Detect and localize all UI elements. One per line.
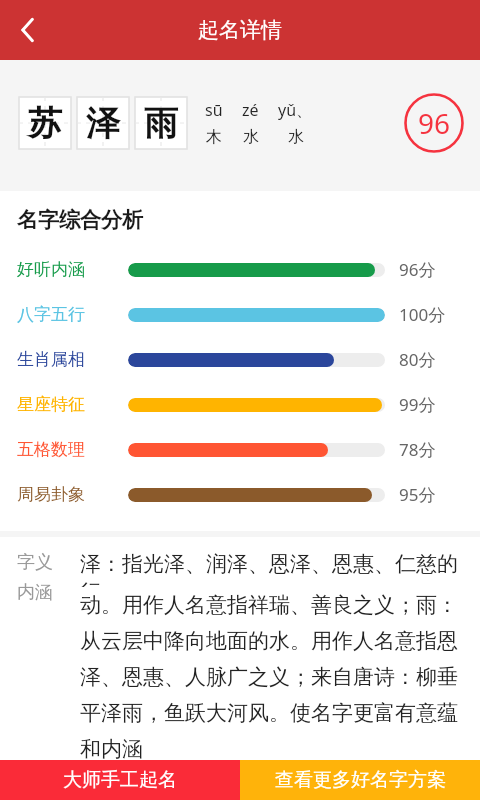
staticText: 查看更多好名字方案	[275, 768, 446, 792]
staticText: 和内涵	[80, 736, 143, 762]
staticText: 96	[418, 104, 451, 142]
button[interactable]: 好听内涵	[0, 247, 480, 292]
staticText: 96分	[399, 258, 436, 281]
staticText: 泽	[86, 102, 120, 145]
staticText: 80分	[399, 348, 436, 371]
staticText: yǔ、	[278, 99, 313, 121]
staticText: 95分	[399, 483, 436, 506]
staticText: 星座特征	[17, 394, 112, 415]
staticText: 从云层中降向地面的水。用作人名意指恩	[80, 628, 458, 654]
button[interactable]: 周易卦象	[0, 472, 480, 517]
staticText: 雨	[144, 102, 178, 145]
staticText: sū	[205, 99, 223, 121]
staticText: 大师手工起名	[63, 768, 177, 792]
staticText: zé	[242, 99, 259, 121]
staticText: 泽：指光泽、润泽、恩泽、恩惠、仁慈的行	[80, 551, 470, 587]
button[interactable]: 星座特征	[0, 382, 480, 427]
staticText: 生肖属相	[17, 349, 112, 370]
staticText: 78分	[399, 438, 436, 461]
staticText: 动。用作人名意指祥瑞、善良之义；雨：	[80, 592, 458, 618]
staticText: 好听内涵	[17, 259, 112, 280]
staticText: 100分	[399, 303, 446, 326]
staticText: 水	[288, 127, 304, 147]
button[interactable]: 八字五行	[0, 292, 480, 337]
staticText: 苏	[28, 102, 62, 145]
button[interactable]: 生肖属相	[0, 337, 480, 382]
button[interactable]: 96	[404, 93, 464, 153]
staticText: 五格数理	[17, 439, 112, 460]
button[interactable]: 大师手工起名	[0, 760, 240, 800]
button[interactable]: 查看更多好名字方案	[240, 760, 480, 800]
button[interactable]: 五格数理	[0, 427, 480, 472]
staticText: 名字综合分析	[17, 207, 143, 233]
staticText: 平泽雨，鱼跃大河风。使名字更富有意蕴	[80, 700, 458, 726]
staticText: 水	[243, 127, 259, 147]
staticText: 字义	[17, 551, 53, 574]
staticText: 内涵	[17, 581, 53, 604]
staticText: 起名详情	[198, 17, 282, 43]
staticText: 木	[206, 127, 222, 147]
staticText: 泽、恩惠、人脉广之义；来自唐诗：柳垂	[80, 664, 458, 690]
staticText: 周易卦象	[17, 484, 112, 505]
button[interactable]: Back	[0, 0, 56, 60]
staticText: 99分	[399, 393, 436, 416]
staticText: 八字五行	[17, 304, 112, 325]
